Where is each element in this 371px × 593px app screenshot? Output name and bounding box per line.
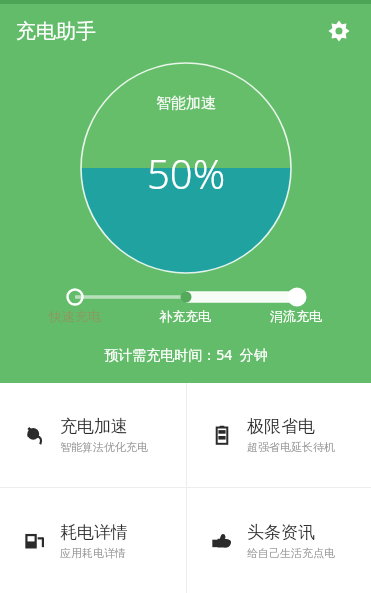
staticText: 智能加速 [156, 94, 216, 113]
staticText: 补充充电 [159, 308, 211, 324]
staticText: 智能算法优化充电 [60, 440, 148, 454]
button[interactable]: Extreme power saving [187, 383, 371, 487]
button[interactable]: Battery usage detail [0, 488, 186, 593]
staticText: 充电加速 [60, 416, 128, 437]
staticText: 涓流充电 [270, 308, 322, 324]
staticText: 快速充电 [49, 308, 101, 324]
button[interactable]: Charge progress 50 percent [80, 62, 292, 274]
staticText: 极限省电 [247, 416, 315, 437]
button[interactable]: Charge boost [0, 383, 186, 487]
staticText: 耗电详情 [60, 522, 128, 543]
button[interactable]: News headlines [187, 488, 371, 593]
staticText: 充电助手 [16, 19, 96, 44]
staticText: 预计需充电时间：54 分钟 [104, 345, 268, 364]
staticText: 给自己生活充点电 [247, 546, 335, 560]
staticText: 超强省电延长待机 [247, 440, 335, 454]
button[interactable]: Settings [319, 11, 359, 51]
staticText: 50% [147, 146, 226, 200]
staticText: 应用耗电详情 [60, 546, 126, 560]
staticText: 头条资讯 [247, 522, 315, 543]
